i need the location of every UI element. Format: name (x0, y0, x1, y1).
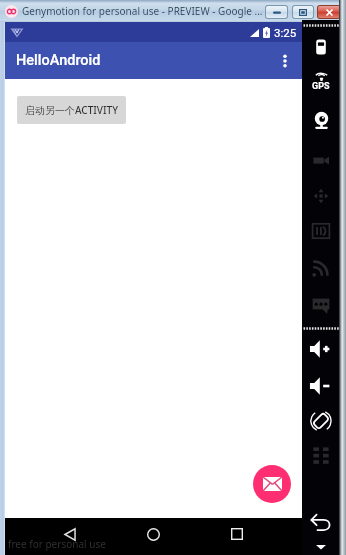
button[interactable]: Navigation pad (302, 179, 340, 213)
button[interactable]: Volume down (302, 369, 340, 403)
staticText: 3:25 (274, 26, 297, 39)
button[interactable]: Battery (302, 30, 340, 64)
button[interactable]: GPS (302, 69, 340, 95)
button[interactable]: Recent apps (219, 518, 255, 550)
button[interactable]: Network (302, 251, 340, 285)
staticText: Genymotion for personal use - PREVIEW - … (22, 4, 263, 18)
button[interactable]: Undo (302, 506, 340, 540)
button[interactable]: Back (52, 518, 88, 550)
staticText: HelloAndroid (16, 52, 101, 69)
button[interactable] (318, 6, 340, 18)
staticText: GPS (312, 81, 330, 92)
staticText: free for personal use (8, 537, 106, 551)
button[interactable]: Show more (302, 530, 340, 555)
button[interactable]: Home (135, 518, 171, 550)
button[interactable]: Identifiers (302, 214, 340, 248)
button[interactable] (266, 6, 287, 18)
button[interactable]: Keyboard (302, 438, 340, 472)
button[interactable]: Camera (302, 103, 340, 137)
button[interactable]: More options (271, 47, 299, 75)
button[interactable]: Volume up (302, 332, 340, 366)
button[interactable]: Compose email (253, 465, 291, 503)
button[interactable] (293, 6, 313, 18)
button[interactable]: 启动另一个ACTIVITY (17, 96, 126, 124)
staticText: 启动另一个ACTIVITY (25, 103, 119, 117)
button[interactable]: Messaging (302, 288, 340, 322)
button[interactable]: Video recorder (302, 143, 340, 177)
button[interactable]: Rotate screen (302, 404, 340, 438)
